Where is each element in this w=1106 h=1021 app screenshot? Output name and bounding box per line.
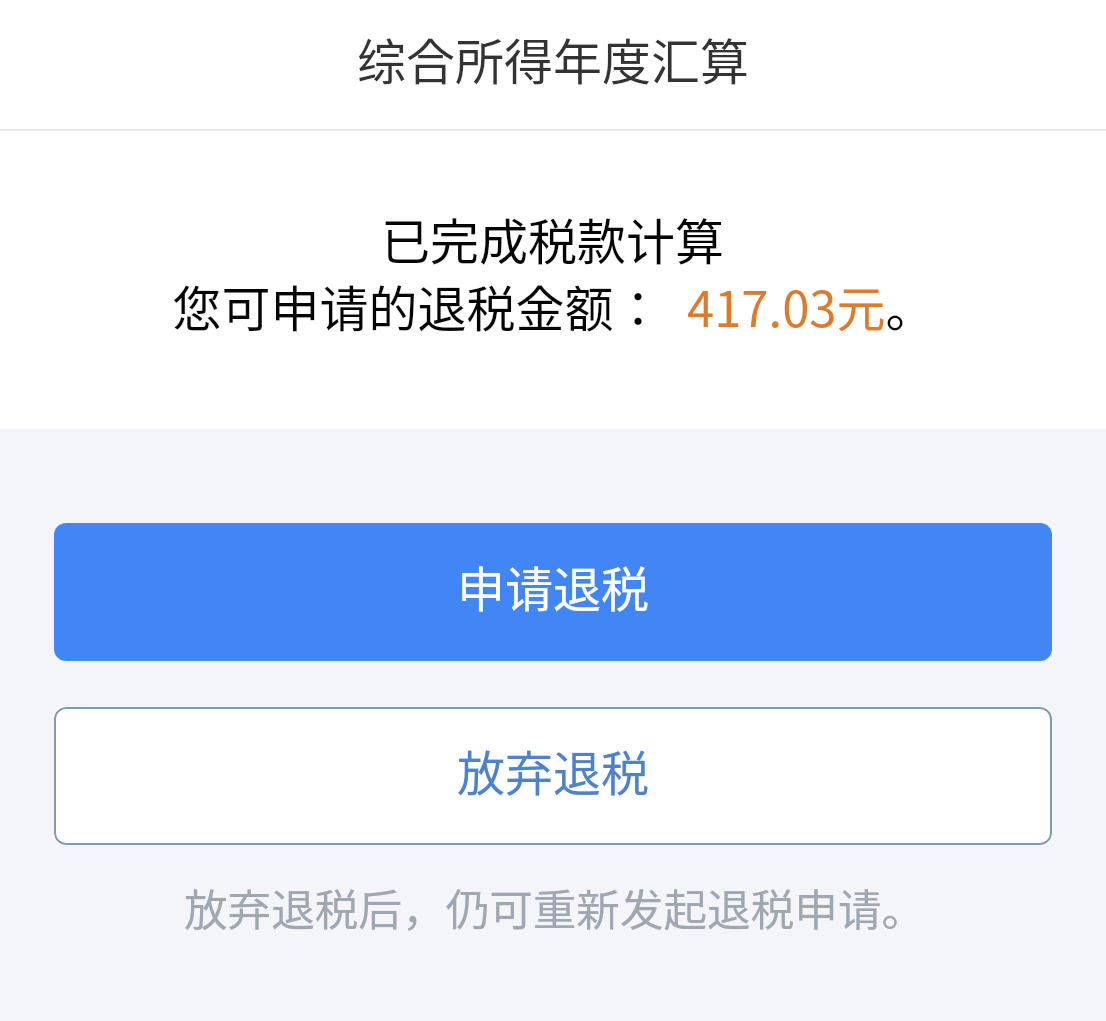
staticText: 放弃退税后，仍可重新发起退税申请。 [184, 875, 926, 938]
button[interactable]: 申请退税 [54, 523, 1052, 661]
staticText: 综合所得年度汇算 [357, 23, 750, 94]
staticText: 申请退税 [457, 551, 650, 621]
button[interactable]: 放弃退税 [54, 707, 1052, 845]
staticText: 已完成税款计算 [381, 203, 725, 274]
staticText: 放弃退税 [457, 735, 650, 805]
staticText: 您可申请的退税金额： 417.03元。 [172, 270, 935, 341]
